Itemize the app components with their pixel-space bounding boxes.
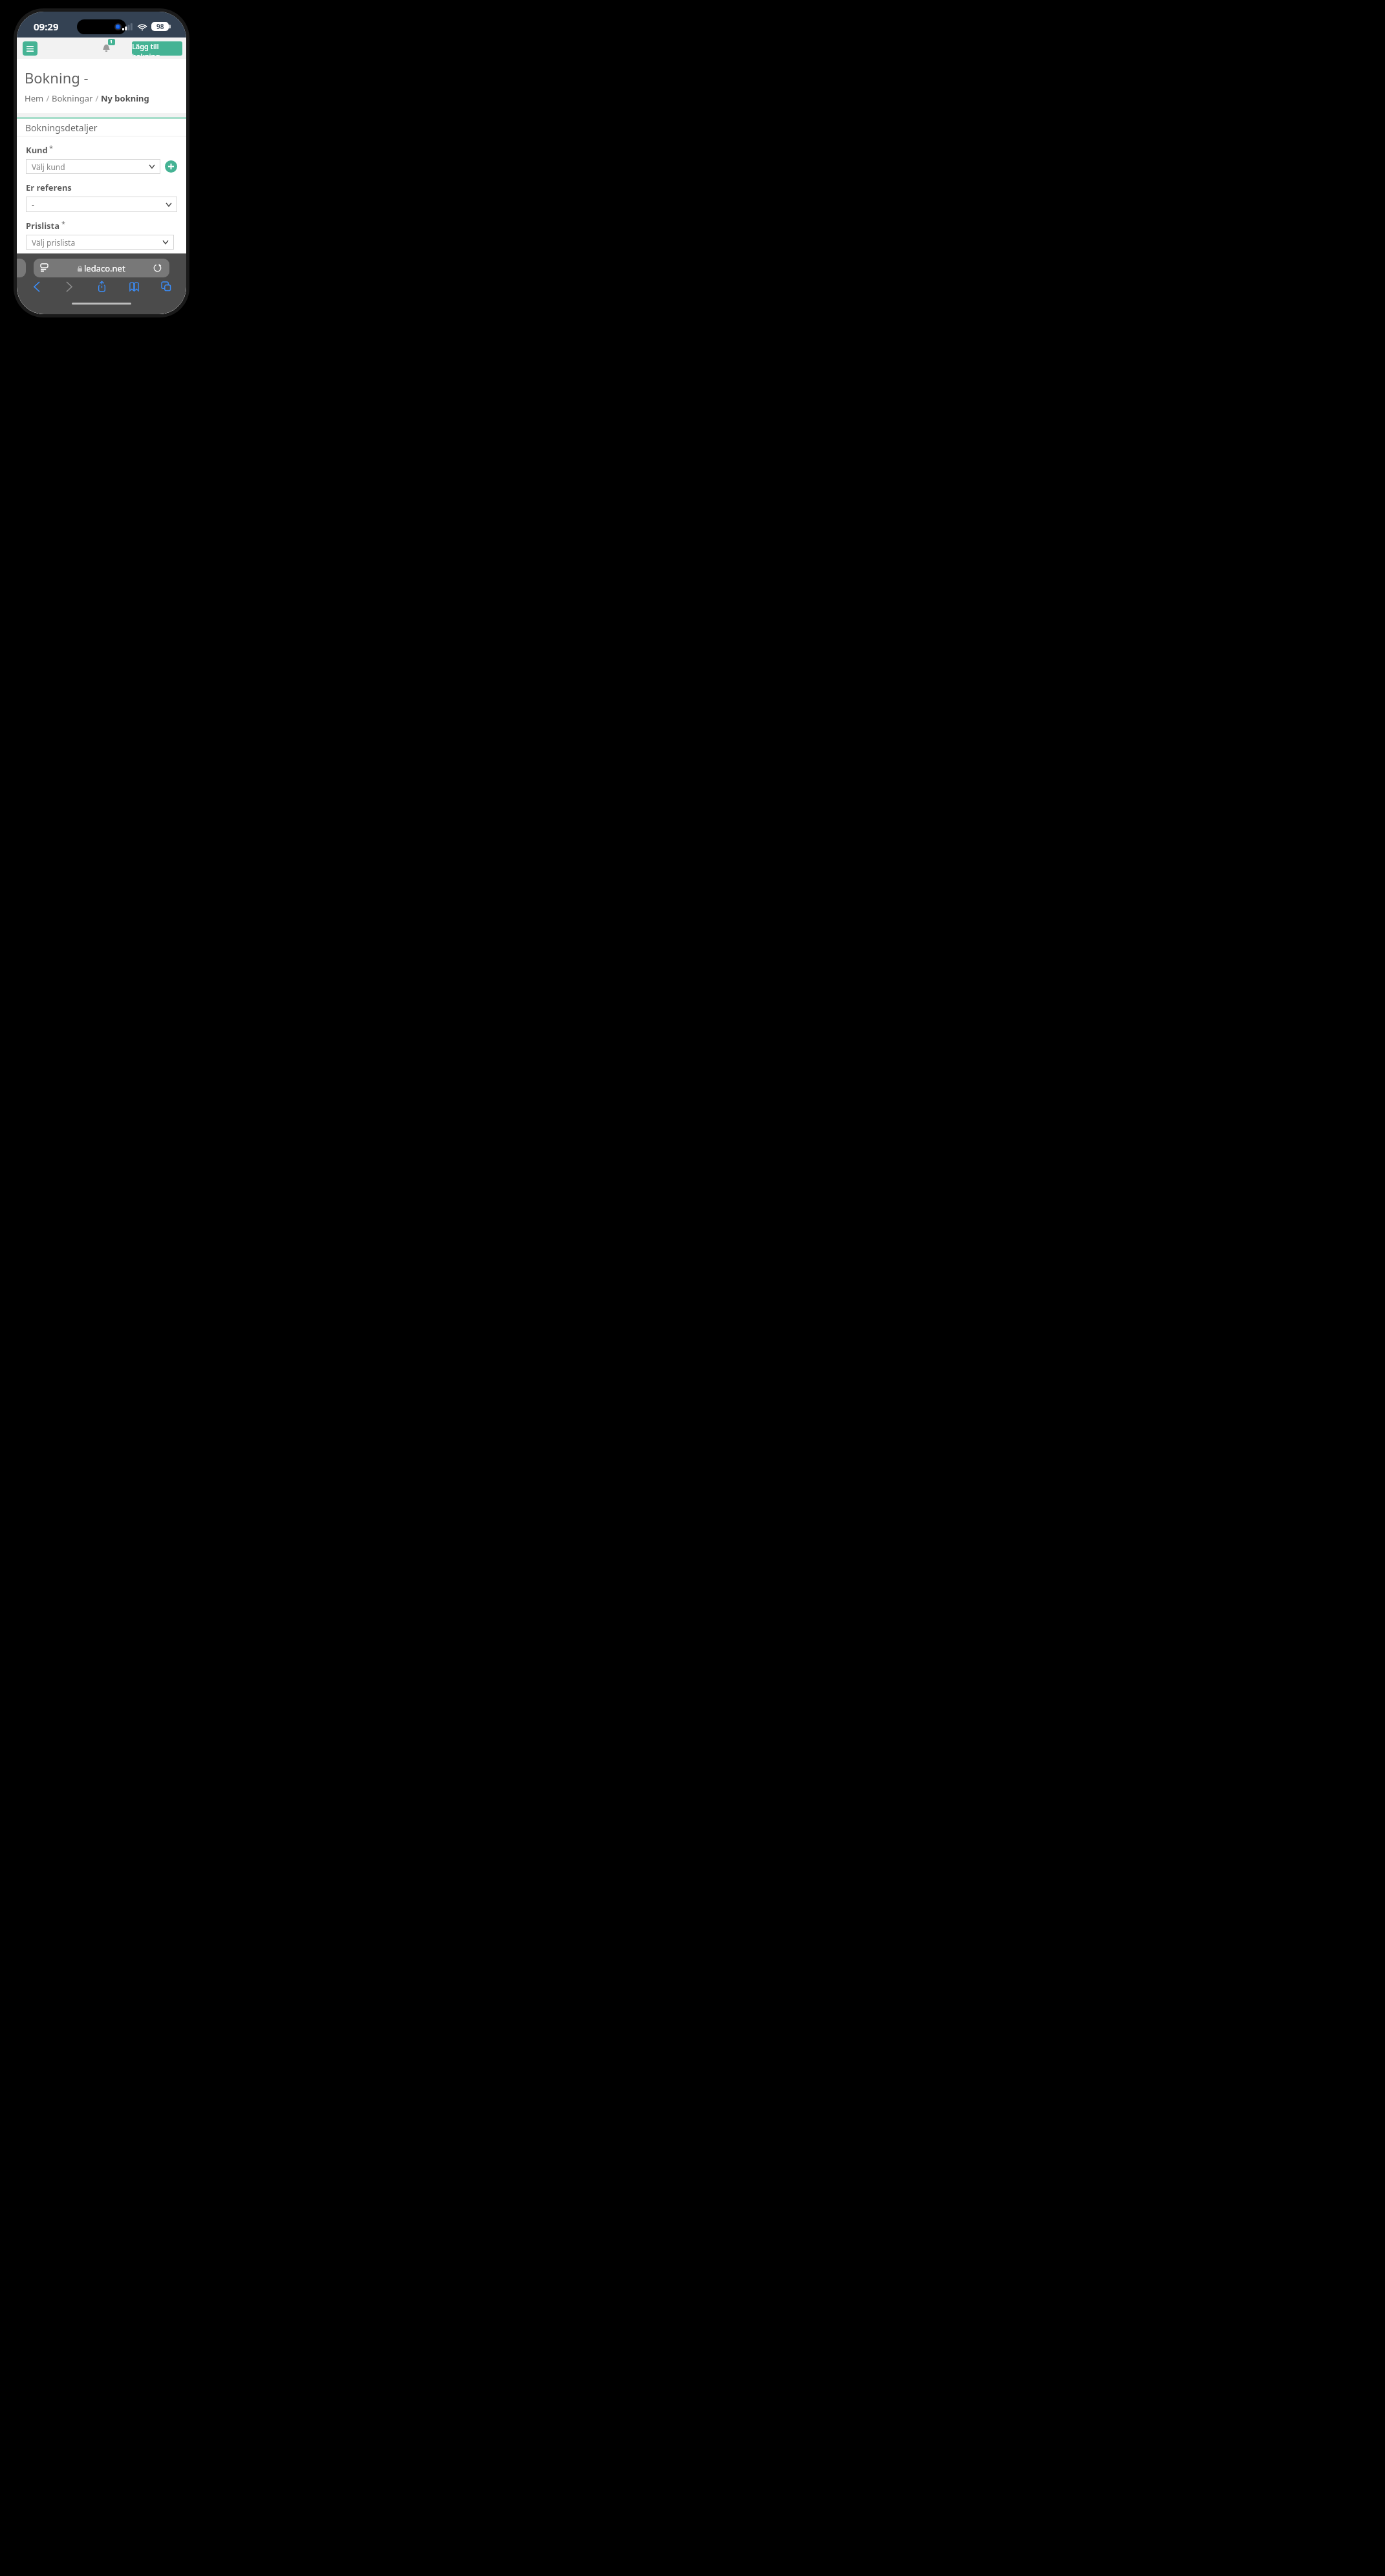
button[interactable]: Lägg till bokning: [132, 41, 182, 56]
staticText: Projekt: [26, 257, 57, 269]
staticText: 1: [110, 39, 113, 45]
staticText: Lägg till bokning: [132, 41, 182, 56]
staticText: /: [44, 92, 52, 104]
staticText: Er referens: [26, 182, 72, 193]
button[interactable]: Notiser: [98, 39, 114, 56]
button[interactable]: Flikar: [158, 278, 175, 295]
button[interactable]: Tillbaka: [28, 279, 45, 294]
button[interactable]: Dela: [93, 278, 110, 295]
button[interactable]: [26, 272, 177, 287]
staticText: Bokning -: [25, 68, 89, 87]
button[interactable]: Lägg till kund: [165, 160, 177, 173]
other: Sidinställningar: [41, 264, 48, 272]
staticText: *: [49, 143, 54, 153]
staticText: Välj prislista: [32, 237, 76, 248]
button[interactable]: -: [26, 197, 177, 212]
staticText: /: [93, 92, 101, 104]
staticText: Kund: [26, 144, 48, 156]
button[interactable]: Framåt: [61, 279, 78, 294]
button[interactable]: Sidinställningar: [34, 259, 169, 277]
button[interactable]: Välj prislista: [26, 235, 174, 250]
staticText: Ny bokning: [101, 92, 149, 104]
button[interactable]: Bokmärken: [125, 278, 142, 295]
staticText: *: [61, 219, 66, 228]
button[interactable]: Hem: [25, 92, 44, 104]
staticText: Välj kund: [32, 162, 65, 172]
button[interactable]: Bokningar: [52, 92, 93, 104]
button[interactable]: Meny: [23, 41, 38, 56]
button[interactable]: [26, 310, 177, 314]
staticText: -: [32, 199, 34, 209]
other: Ladda om: [153, 264, 162, 272]
staticText: Bokningsdetaljer: [25, 122, 98, 134]
staticText: ledaco.net: [84, 263, 125, 274]
staticText: 98: [156, 22, 164, 31]
staticText: 09:29: [34, 20, 59, 33]
staticText: Prislista: [26, 220, 60, 231]
button[interactable]: Välj kund: [26, 159, 160, 174]
staticText: Beskrivning: [26, 295, 76, 306]
